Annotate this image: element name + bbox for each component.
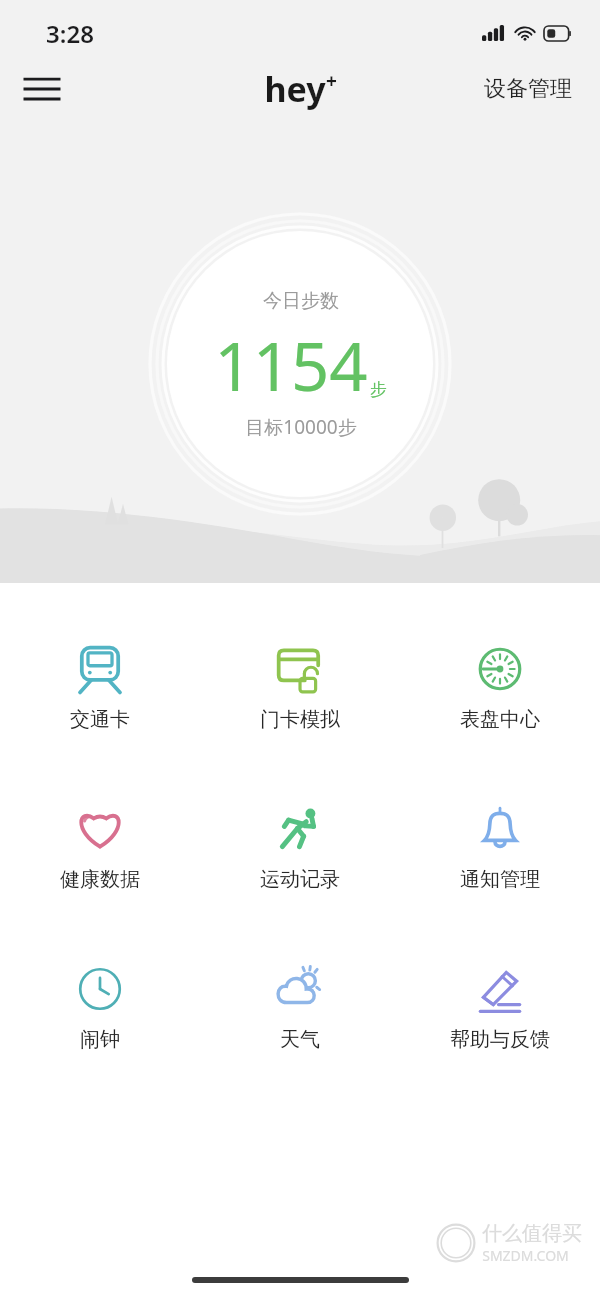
staticText: 通知管理 (460, 867, 540, 892)
button[interactable]: 今日步数 (150, 214, 450, 514)
button[interactable]: 天气 (200, 959, 400, 1056)
staticText: 运动记录 (260, 867, 340, 892)
staticText: 目标10000步 (245, 414, 357, 440)
staticText: 交通卡 (70, 707, 130, 732)
staticText: 闹钟 (80, 1027, 120, 1052)
staticText: + (326, 68, 337, 94)
staticText: SMZDM.COM (482, 1246, 569, 1265)
button[interactable]: 健康数据 (0, 799, 200, 896)
staticText: hey (264, 66, 326, 112)
button[interactable]: 交通卡 (0, 639, 200, 736)
button[interactable]: 运动记录 (200, 799, 400, 896)
staticText: 天气 (280, 1027, 320, 1052)
staticText: 门卡模拟 (260, 707, 340, 732)
button[interactable]: 门卡模拟 (200, 639, 400, 736)
staticText: 1154 (214, 319, 368, 410)
button[interactable]: 表盘中心 (400, 639, 600, 736)
staticText: 3:28 (46, 17, 94, 50)
staticText: 什么值得买 (482, 1221, 582, 1246)
staticText: 设备管理 (484, 75, 572, 103)
button[interactable]: 通知管理 (400, 799, 600, 896)
staticText: 今日步数 (263, 289, 339, 313)
button[interactable]: 帮助与反馈 (400, 959, 600, 1056)
button[interactable]: 设备管理 (478, 67, 578, 111)
staticText: 健康数据 (60, 867, 140, 892)
button[interactable]: 闹钟 (0, 959, 200, 1056)
staticText: 步 (370, 379, 387, 400)
staticText: 帮助与反馈 (450, 1027, 550, 1052)
button[interactable]: Menu (14, 61, 70, 117)
staticText: 表盘中心 (460, 707, 540, 732)
